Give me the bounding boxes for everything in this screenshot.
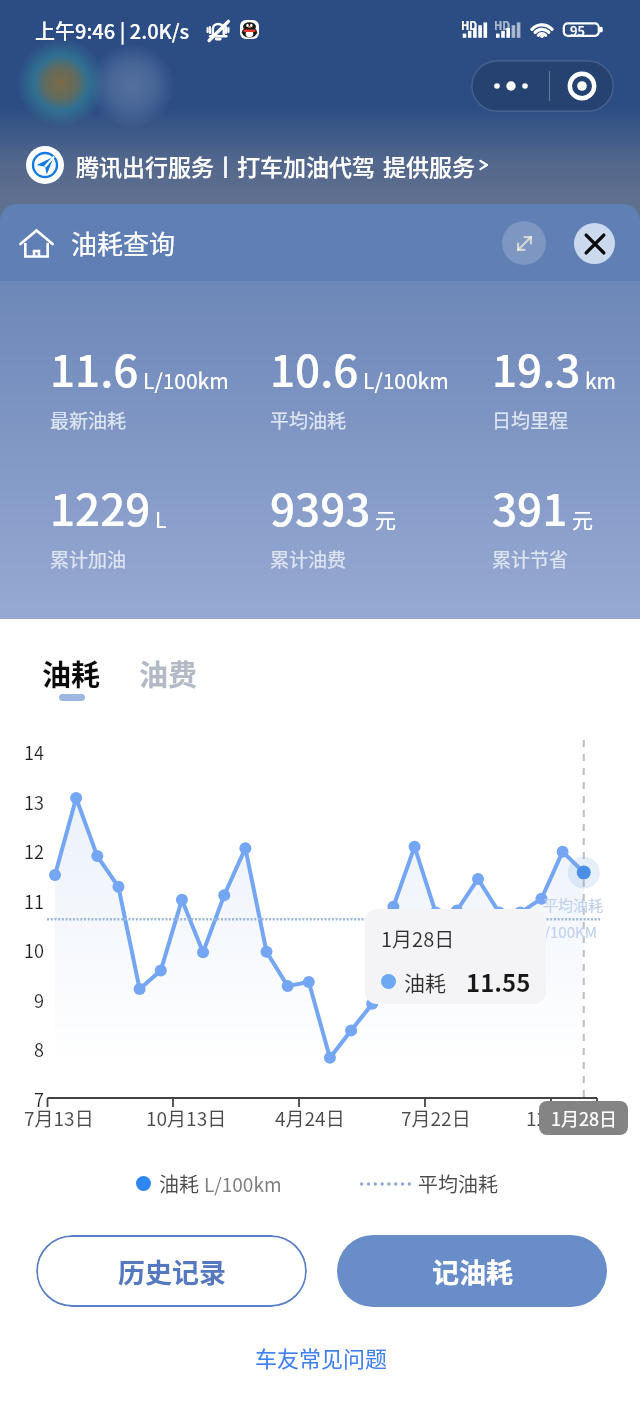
staticText: 油耗 — [42, 652, 101, 694]
staticText: 腾讯出行服务丨打车加油代驾 — [76, 149, 375, 182]
staticText: HD — [494, 17, 511, 33]
staticText: 13 — [24, 789, 44, 813]
staticText: L/100km — [363, 365, 449, 395]
staticText: 14 — [24, 739, 44, 763]
staticText: 平均油耗 — [418, 1169, 498, 1198]
button[interactable]: 记油耗 — [337, 1235, 607, 1307]
button[interactable]: Close mini program — [550, 61, 613, 111]
button[interactable]: 腾讯出行服务丨打车加油代驾 — [0, 128, 640, 202]
staticText: 最新油耗 — [50, 406, 127, 434]
button[interactable]: Expand — [502, 221, 546, 265]
staticText: 19.3 — [492, 336, 581, 400]
staticText: 95 — [570, 21, 585, 40]
staticText: 391 — [492, 475, 568, 539]
staticText: 油耗 — [404, 967, 446, 997]
staticText: km — [585, 365, 617, 395]
staticText: 10月13日 — [146, 1104, 227, 1132]
staticText: 1月28日 — [381, 924, 455, 953]
staticText: 4月24日 — [275, 1104, 345, 1132]
staticText: 提供服务 — [383, 149, 475, 182]
staticText: 元 — [375, 504, 396, 534]
staticText: 历史记录 — [118, 1252, 226, 1291]
staticText: 12 — [24, 838, 44, 862]
button[interactable]: 油耗 — [42, 652, 101, 701]
staticText: 油费 — [139, 652, 198, 694]
staticText: 记油耗 — [432, 1252, 513, 1291]
staticText: 油耗查询 — [71, 224, 176, 262]
staticText: HD — [461, 17, 478, 33]
staticText: 8 — [34, 1036, 44, 1060]
staticText: 元 — [572, 504, 593, 534]
staticText: L/100km — [204, 1170, 282, 1198]
staticText: 9 — [34, 987, 44, 1011]
staticText: 平均油耗 — [270, 406, 347, 434]
staticText: 上午9:46 | 2.0K/s — [35, 16, 190, 45]
button[interactable]: Close — [574, 223, 615, 264]
staticText: 9393 — [270, 475, 371, 539]
staticText: 11.6 — [50, 336, 139, 400]
staticText: 平均油耗 — [543, 894, 604, 916]
staticText: 1月28日 — [551, 1105, 617, 1131]
staticText: 1229 — [50, 475, 151, 539]
staticText: 10 — [24, 937, 44, 961]
staticText: 累计节省 — [492, 545, 569, 573]
staticText: 11 — [24, 888, 44, 912]
staticText: 7月22日 — [401, 1104, 471, 1132]
staticText: 7 — [34, 1086, 44, 1110]
staticText: 11.55 — [466, 964, 531, 999]
staticText: 日均里程 — [492, 406, 569, 434]
staticText: 10.6 — [270, 336, 359, 400]
staticText: 油耗 — [159, 1169, 199, 1198]
button[interactable]: More — [472, 61, 549, 111]
staticText: L/100km — [143, 365, 229, 395]
staticText: L — [155, 504, 167, 534]
staticText: 12月 — [526, 1104, 567, 1132]
staticText: 累计油费 — [270, 545, 347, 573]
staticText: 累计加油 — [50, 545, 127, 573]
button[interactable]: Home — [14, 221, 58, 265]
button[interactable]: 历史记录 — [36, 1235, 307, 1307]
staticText: 车友常见问题 — [255, 1341, 388, 1373]
staticText: 7月13日 — [24, 1104, 94, 1132]
button[interactable]: 车友常见问题 — [247, 1337, 396, 1377]
button[interactable]: 油费 — [139, 652, 198, 694]
staticText: L/100KM — [536, 921, 597, 943]
